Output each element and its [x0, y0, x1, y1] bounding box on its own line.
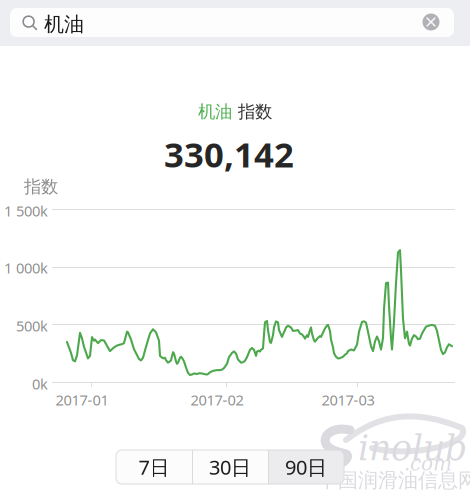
staticText: inolub: [358, 428, 467, 468]
staticText: 2017-01: [55, 390, 108, 409]
button[interactable]: 30日: [192, 450, 268, 484]
button[interactable]: 90日: [268, 450, 344, 484]
staticText: 0k: [32, 374, 48, 393]
staticText: 1 500k: [4, 201, 48, 220]
staticText: 中国润滑油信息网: [318, 468, 470, 493]
staticText: 500k: [16, 316, 48, 335]
staticText: 机油: [198, 101, 232, 122]
staticText: 90日: [285, 454, 327, 480]
button[interactable]: Clear search text: [418, 9, 444, 35]
staticText: 7日: [138, 454, 169, 480]
staticText: 指数: [24, 176, 58, 197]
button[interactable]: 7日: [116, 450, 192, 484]
staticText: 1 000k: [4, 258, 48, 277]
staticText: 机油: [44, 12, 84, 37]
staticText: 指数: [238, 101, 272, 122]
staticText: 30日: [209, 454, 251, 480]
button[interactable]: 机油: [10, 8, 454, 37]
staticText: .com: [404, 452, 452, 475]
staticText: 330,142: [164, 131, 294, 177]
staticText: 2017-03: [321, 390, 374, 409]
staticText: 2017-02: [190, 390, 243, 409]
